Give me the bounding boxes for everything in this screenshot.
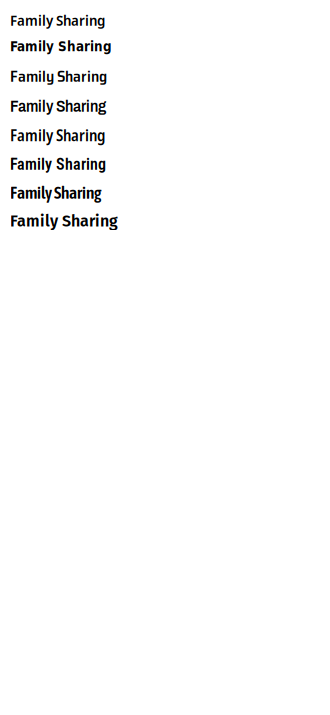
staticText: Family Sharing: [10, 63, 107, 89]
staticText: Family Sharing: [10, 10, 105, 30]
staticText: Family Sharing: [10, 39, 112, 54]
staticText: Family Sharing: [10, 98, 106, 115]
staticText: Family Sharing: [10, 155, 106, 174]
staticText: Family Sharing: [10, 183, 101, 202]
staticText: Family Sharing: [10, 211, 118, 231]
staticText: Family Sharing: [10, 124, 105, 146]
